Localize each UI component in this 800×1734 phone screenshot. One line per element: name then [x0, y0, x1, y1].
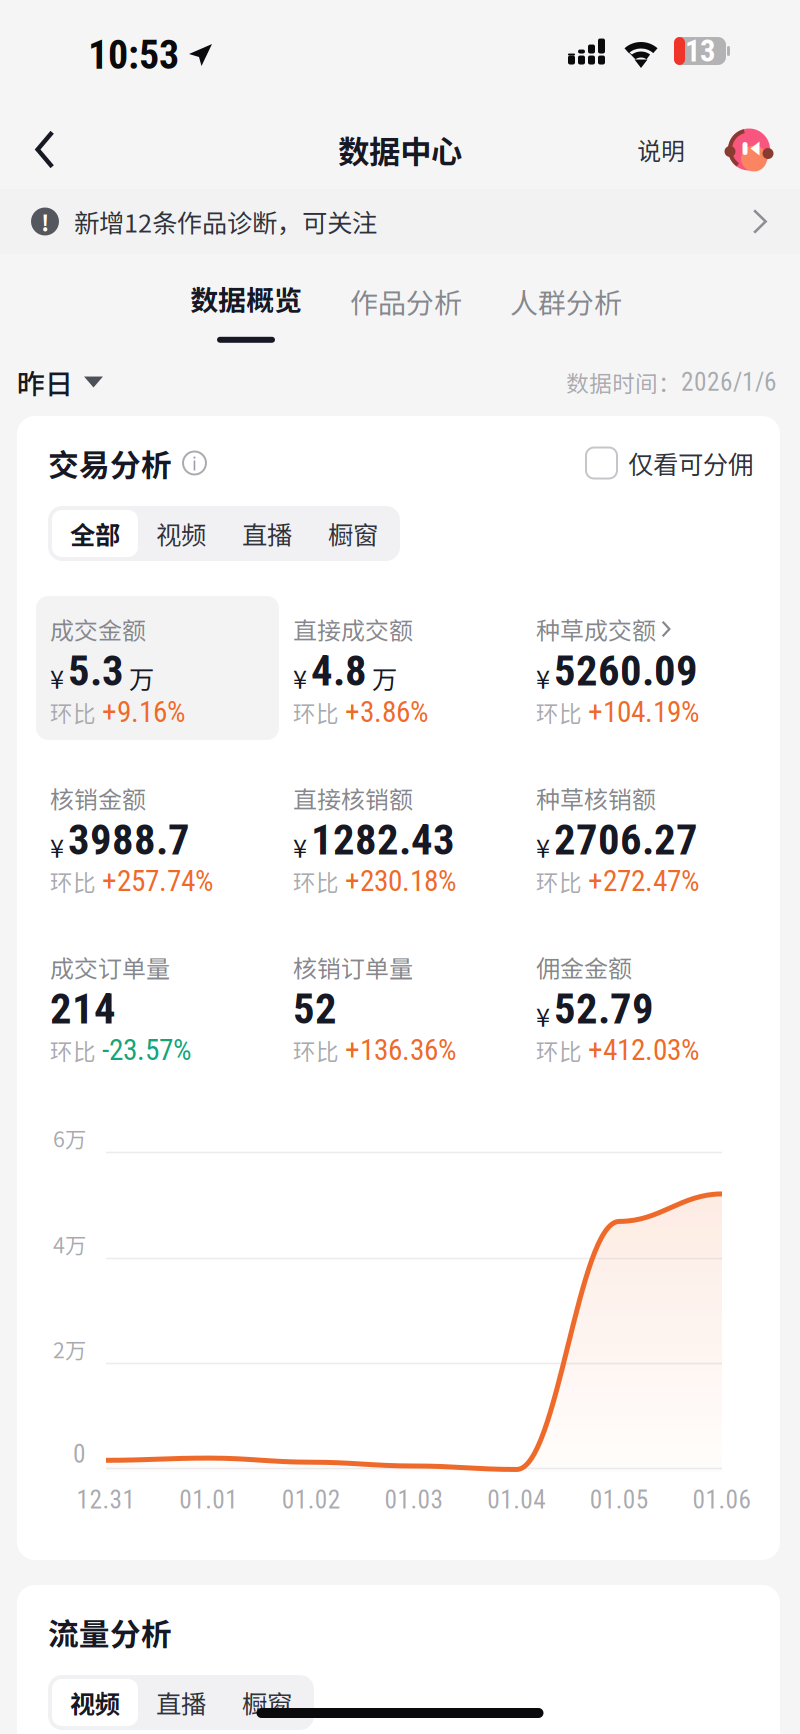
- button[interactable]: 视频: [138, 510, 224, 557]
- staticText: 核销订单量: [293, 950, 413, 984]
- staticText: ¥: [536, 659, 550, 696]
- staticText: 直播: [242, 515, 292, 552]
- staticText: ¥: [50, 828, 64, 865]
- staticText: 直接成交额: [293, 612, 413, 646]
- staticText: 仅看可分佣: [628, 445, 753, 481]
- staticText: 环比: [50, 696, 96, 728]
- staticText: 环比: [293, 865, 339, 897]
- button[interactable]: 橱窗: [310, 510, 396, 557]
- staticText: 全部: [70, 515, 120, 552]
- staticText: 01.05: [590, 1485, 649, 1515]
- button[interactable]: 返回: [0, 110, 84, 189]
- button[interactable]: 说明: [629, 110, 693, 189]
- staticText: 数据时间：: [566, 366, 681, 398]
- button[interactable]: 数据概览: [190, 254, 302, 348]
- staticText: i: [192, 450, 197, 476]
- staticText: 种草成交额: [536, 612, 656, 646]
- staticText: 0: [73, 1439, 86, 1469]
- staticText: 数据概览: [190, 278, 302, 319]
- staticText: 01.03: [384, 1485, 443, 1515]
- button[interactable]: 直播: [224, 510, 310, 557]
- staticText: 环比: [50, 1034, 96, 1066]
- staticText: ¥: [50, 659, 64, 696]
- staticText: +136.36%: [345, 1033, 457, 1067]
- staticText: 01.02: [282, 1485, 341, 1515]
- staticText: ¥: [293, 828, 307, 865]
- staticText: 视频: [70, 1684, 120, 1721]
- staticText: 2026/1/6: [681, 367, 777, 397]
- button[interactable]: 客服: [723, 110, 775, 189]
- staticText: +9.16%: [102, 695, 186, 729]
- staticText: 视频: [156, 515, 206, 552]
- staticText: 新增12条作品诊断，可关注: [74, 203, 377, 240]
- button[interactable]: 视频: [52, 1679, 138, 1726]
- staticText: 4.8: [311, 646, 367, 696]
- staticText: 佣金金额: [536, 950, 632, 984]
- staticText: 环比: [293, 696, 339, 728]
- staticText: 说明: [637, 132, 685, 167]
- staticText: 10:53: [88, 32, 179, 78]
- button[interactable]: 全部: [52, 510, 138, 557]
- staticText: 52.79: [554, 984, 654, 1034]
- staticText: 种草核销额: [536, 781, 656, 815]
- staticText: 214: [50, 984, 116, 1034]
- staticText: 2706.27: [554, 815, 698, 865]
- staticText: 昨日: [17, 362, 73, 402]
- staticText: 6万: [53, 1123, 86, 1153]
- staticText: ¥: [536, 828, 550, 865]
- button[interactable]: 橱窗: [224, 1679, 310, 1726]
- staticText: 人群分析: [510, 281, 622, 321]
- staticText: 2万: [53, 1334, 86, 1364]
- staticText: 橱窗: [328, 515, 378, 552]
- staticText: ¥: [536, 997, 550, 1034]
- staticText: 流量分析: [48, 1610, 172, 1654]
- staticText: 5260.09: [554, 646, 698, 696]
- staticText: 3988.7: [68, 815, 190, 865]
- button[interactable]: 作品分析: [350, 254, 462, 348]
- staticText: +230.18%: [345, 864, 457, 898]
- staticText: 环比: [293, 1034, 339, 1066]
- staticText: 成交订单量: [50, 950, 170, 984]
- staticText: 5.3: [68, 646, 124, 696]
- staticText: 作品分析: [350, 281, 462, 321]
- staticText: 4万: [53, 1229, 86, 1259]
- staticText: -23.57%: [102, 1033, 192, 1067]
- staticText: 直播: [156, 1684, 206, 1721]
- staticText: 环比: [536, 1034, 582, 1066]
- button[interactable]: 仅看可分佣: [586, 445, 753, 481]
- staticText: 橱窗: [242, 1684, 292, 1721]
- staticText: 数据中心: [338, 127, 462, 172]
- staticText: !: [41, 205, 49, 238]
- staticText: 01.06: [692, 1485, 751, 1515]
- staticText: 环比: [50, 865, 96, 897]
- staticText: 13: [685, 33, 715, 69]
- staticText: 01.04: [487, 1485, 546, 1515]
- staticText: 12.31: [76, 1485, 135, 1515]
- staticText: 环比: [536, 865, 582, 897]
- staticText: 核销金额: [50, 781, 146, 815]
- staticText: 01.01: [179, 1485, 238, 1515]
- staticText: 直接核销额: [293, 781, 413, 815]
- staticText: ¥: [293, 659, 307, 696]
- staticText: 环比: [536, 696, 582, 728]
- button[interactable]: 直播: [138, 1679, 224, 1726]
- staticText: +412.03%: [588, 1033, 700, 1067]
- staticText: 万: [129, 659, 154, 696]
- button[interactable]: !: [0, 189, 800, 254]
- button[interactable]: 人群分析: [510, 254, 622, 348]
- staticText: +104.19%: [588, 695, 700, 729]
- staticText: 万: [372, 659, 397, 696]
- staticText: +257.74%: [102, 864, 214, 898]
- staticText: 成交金额: [50, 612, 146, 646]
- staticText: 交易分析: [48, 441, 172, 485]
- button[interactable]: 昨日: [17, 350, 103, 414]
- staticText: +272.47%: [588, 864, 700, 898]
- staticText: +3.86%: [345, 695, 429, 729]
- staticText: 1282.43: [311, 815, 455, 865]
- staticText: 52: [293, 984, 337, 1034]
